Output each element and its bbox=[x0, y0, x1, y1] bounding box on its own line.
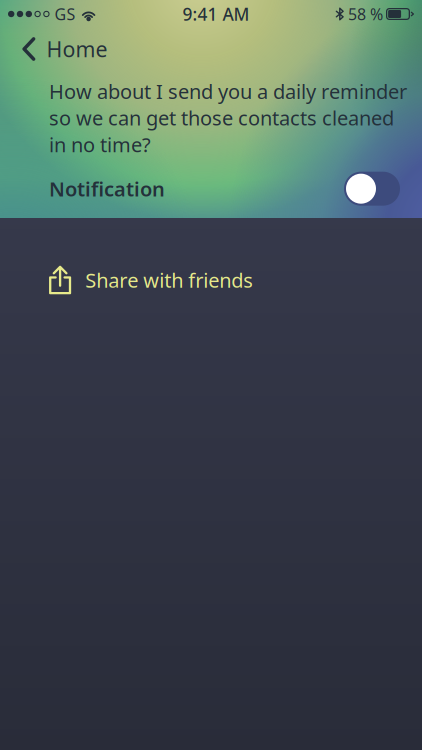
staticText: 58 % bbox=[348, 3, 383, 25]
button[interactable]: Share with friends bbox=[35, 256, 267, 304]
staticText: Home bbox=[46, 35, 107, 63]
staticText: Share with friends bbox=[85, 267, 253, 293]
staticText: GS bbox=[55, 3, 76, 25]
staticText: Notification bbox=[49, 175, 165, 202]
staticText: 9:41 AM bbox=[183, 2, 250, 25]
staticText: How about I send you a daily reminder so… bbox=[49, 78, 407, 158]
button[interactable]: Home bbox=[0, 31, 121, 67]
button[interactable]: Notification bbox=[344, 172, 400, 206]
